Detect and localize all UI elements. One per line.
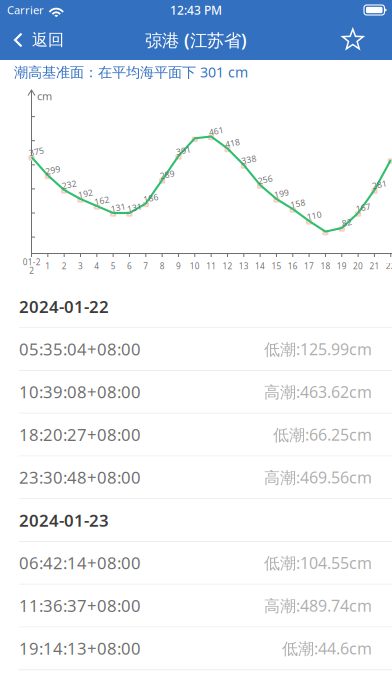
staticText: 12 xyxy=(222,260,232,272)
staticText: 186 xyxy=(143,192,158,204)
button[interactable]: 06:42:14+08:00 xyxy=(0,542,392,585)
staticText: 19 xyxy=(337,260,347,272)
staticText: 17 xyxy=(304,260,314,272)
staticText: 10 xyxy=(190,260,200,272)
staticText: 1 xyxy=(45,260,50,272)
staticText: 8 xyxy=(160,260,165,272)
staticText: 23:30:48+08:00 xyxy=(19,466,141,489)
staticText: 低潮:44.6cm xyxy=(282,637,372,659)
staticText: 289 xyxy=(160,169,175,180)
staticText: 弶港 (江苏省) xyxy=(145,28,247,52)
staticText: 418 xyxy=(225,137,240,149)
staticText: 167 xyxy=(356,202,371,213)
staticText: 高潮:489.74cm xyxy=(264,595,372,616)
staticText: 22 xyxy=(386,260,392,272)
staticText: 2 xyxy=(29,265,34,276)
staticText: 15 xyxy=(271,260,281,272)
staticText: 162 xyxy=(94,195,109,206)
staticText: 2 xyxy=(62,260,67,272)
staticText: 11:36:37+08:00 xyxy=(19,594,141,617)
button[interactable]: 19:14:13+08:00 xyxy=(0,627,392,670)
staticText: 131 xyxy=(127,202,142,213)
staticText: 返回 xyxy=(32,30,64,50)
staticText: 10:39:08+08:00 xyxy=(19,380,141,403)
button[interactable]: 23:30:48+08:00 xyxy=(0,456,392,499)
staticText: 131 xyxy=(111,202,126,213)
staticText: 16 xyxy=(288,260,298,272)
staticText: 9 xyxy=(176,260,181,272)
staticText: 潮高基准面：在平均海平面下 301 cm xyxy=(14,62,248,82)
staticText: 12:43 PM xyxy=(170,2,222,18)
staticText: 2024-01-23 xyxy=(19,509,109,532)
staticText: 391 xyxy=(176,145,191,156)
staticText: 5 xyxy=(111,260,116,272)
staticText: 05:35:04+08:00 xyxy=(19,338,141,360)
staticText: 158 xyxy=(290,198,305,209)
staticText: Carrier xyxy=(7,2,44,18)
staticText: 11 xyxy=(206,260,216,272)
staticText: 281 xyxy=(372,179,387,190)
staticText: 19:14:13+08:00 xyxy=(19,637,141,660)
staticText: 06:42:14+08:00 xyxy=(19,551,141,574)
staticText: 低潮:104.55cm xyxy=(264,552,372,574)
staticText: 192 xyxy=(78,188,93,199)
staticText: 低潮:125.99cm xyxy=(264,338,372,360)
staticText: 110 xyxy=(307,210,322,221)
button[interactable]: 返回 xyxy=(0,20,72,60)
button[interactable]: Favorite xyxy=(330,20,392,60)
button[interactable]: 10:39:08+08:00 xyxy=(0,371,392,414)
button[interactable]: 18:20:27+08:00 xyxy=(0,414,392,457)
staticText: 2024-01-22 xyxy=(19,295,109,318)
staticText: 18 xyxy=(320,260,330,272)
staticText: 461 xyxy=(209,125,224,137)
staticText: 14 xyxy=(255,260,265,272)
staticText: 82 xyxy=(342,217,352,228)
staticText: 3 xyxy=(78,260,83,272)
staticText: 375 xyxy=(29,146,44,157)
staticText: 7 xyxy=(143,260,148,272)
staticText: 338 xyxy=(241,154,256,165)
staticText: 6 xyxy=(127,260,132,272)
staticText: 199 xyxy=(274,188,289,199)
staticText: 21 xyxy=(369,260,379,272)
staticText: 232 xyxy=(62,179,77,190)
staticText: 13 xyxy=(239,260,249,272)
staticText: 低潮:66.25cm xyxy=(273,424,372,445)
button[interactable]: 05:35:04+08:00 xyxy=(0,328,392,371)
staticText: 高潮:469.56cm xyxy=(264,466,372,488)
staticText: 20 xyxy=(353,260,363,272)
staticText: 256 xyxy=(258,174,273,185)
staticText: 高潮:463.62cm xyxy=(264,381,372,403)
staticText: 18:20:27+08:00 xyxy=(19,423,141,446)
staticText: 4 xyxy=(94,260,99,272)
staticText: cm xyxy=(37,89,52,103)
staticText: 299 xyxy=(45,164,60,176)
staticText: 01-2 xyxy=(23,256,41,268)
button[interactable]: 11:36:37+08:00 xyxy=(0,585,392,628)
